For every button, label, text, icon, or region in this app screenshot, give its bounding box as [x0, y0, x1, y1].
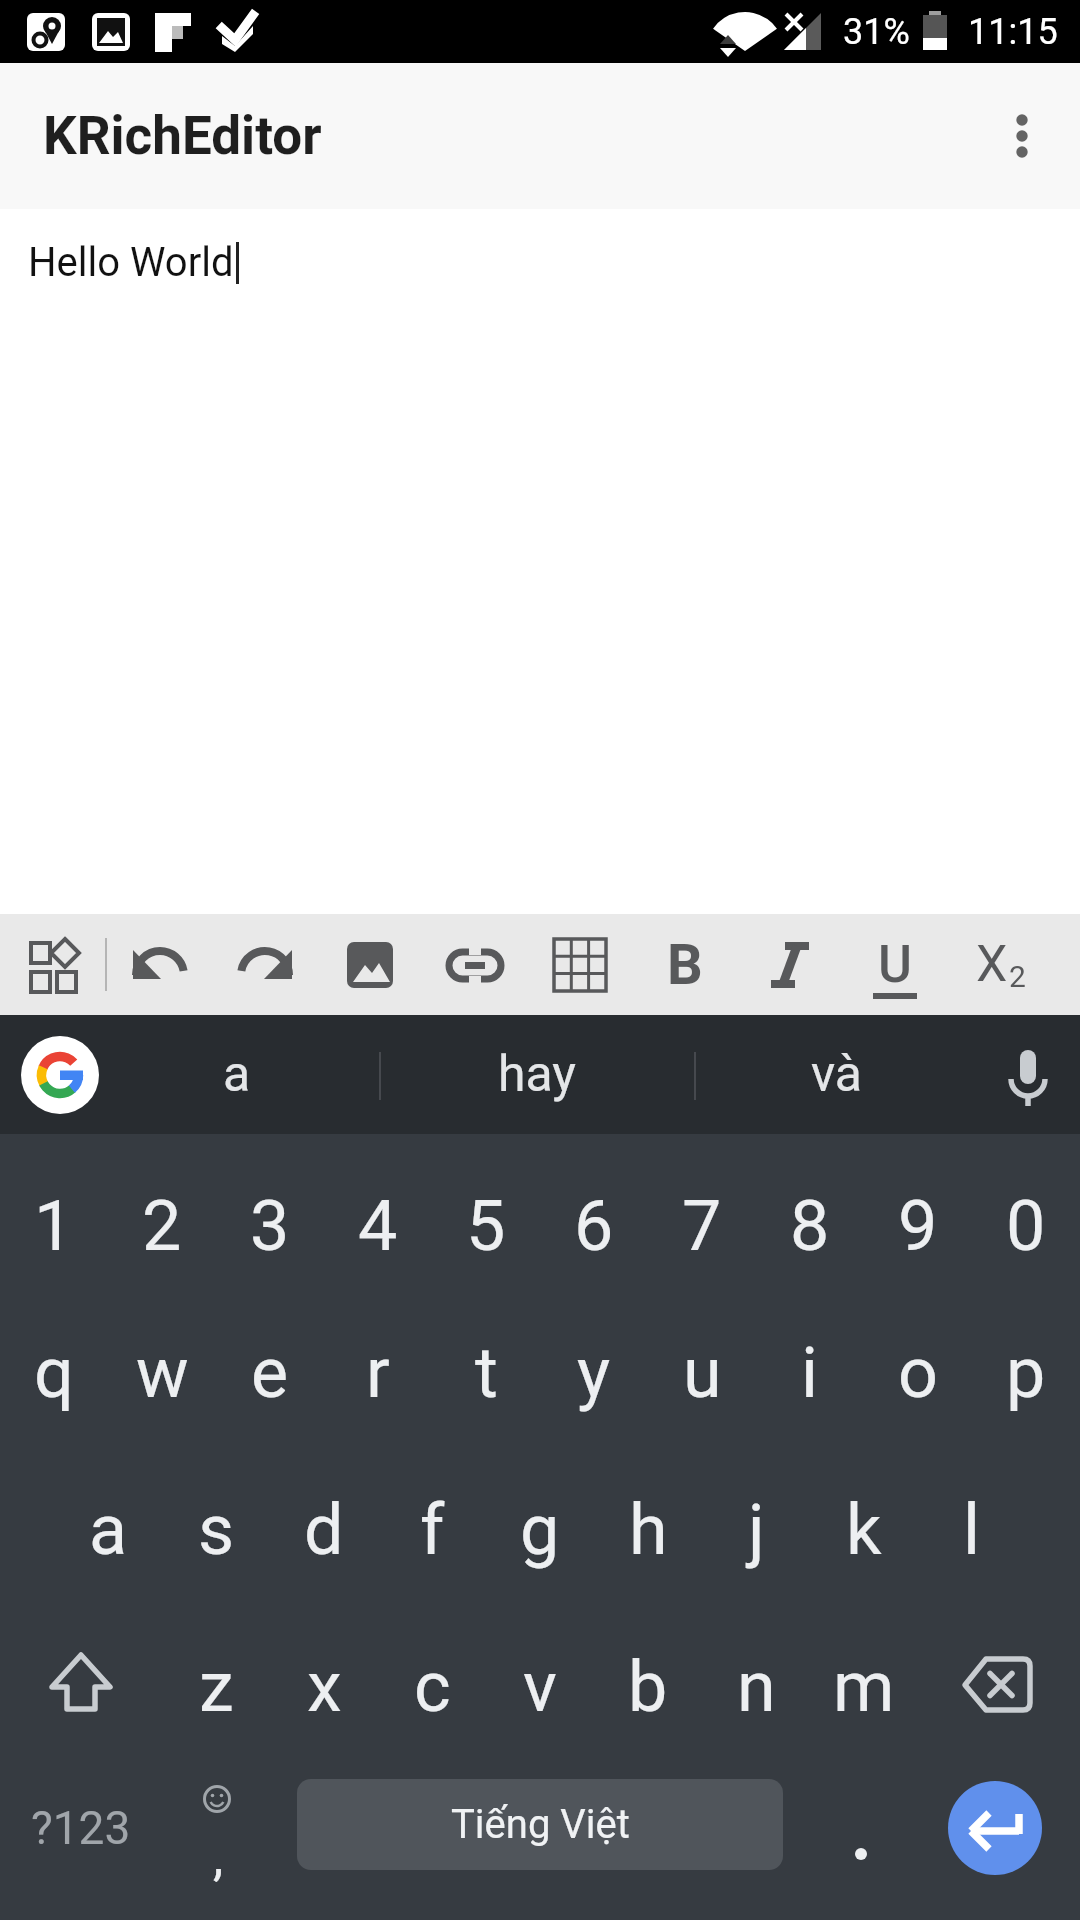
- button[interactable]: m: [810, 1606, 918, 1763]
- button[interactable]: ,: [162, 1763, 270, 1920]
- staticText: u: [683, 1332, 722, 1414]
- button[interactable]: 3: [216, 1134, 324, 1292]
- button[interactable]: t: [432, 1292, 540, 1449]
- staticText: 2: [142, 1185, 182, 1267]
- staticText: s: [198, 1489, 235, 1571]
- button[interactable]: 4: [324, 1134, 432, 1292]
- staticText: 4: [358, 1185, 398, 1267]
- button[interactable]: 7: [648, 1134, 756, 1292]
- button[interactable]: j: [702, 1449, 810, 1606]
- button[interactable]: Hello World: [0, 209, 1080, 914]
- button[interactable]: x: [270, 1606, 378, 1763]
- button[interactable]: và: [787, 1015, 887, 1134]
- button[interactable]: [0, 1606, 162, 1763]
- button[interactable]: u: [648, 1292, 756, 1449]
- staticText: x: [307, 1646, 342, 1728]
- staticText: 11:15: [968, 11, 1058, 53]
- staticText: e: [251, 1332, 289, 1414]
- staticText: b: [628, 1646, 668, 1728]
- staticText: 3: [250, 1185, 290, 1267]
- button[interactable]: B: [632, 914, 737, 1015]
- staticText: và: [811, 1045, 863, 1104]
- button[interactable]: b: [594, 1606, 702, 1763]
- staticText: ,: [213, 1827, 224, 1888]
- button[interactable]: l: [918, 1449, 1026, 1606]
- button[interactable]: hay: [487, 1015, 587, 1134]
- button[interactable]: r: [324, 1292, 432, 1449]
- button[interactable]: [810, 1763, 918, 1920]
- button[interactable]: [212, 914, 317, 1015]
- button[interactable]: [918, 1606, 1080, 1763]
- staticText: k: [846, 1489, 882, 1571]
- staticText: 9: [898, 1185, 938, 1267]
- staticText: 31%: [843, 11, 910, 53]
- button[interactable]: 5: [432, 1134, 540, 1292]
- staticText: a: [223, 1045, 251, 1104]
- button[interactable]: z: [162, 1606, 270, 1763]
- button[interactable]: X: [947, 914, 1052, 1015]
- button[interactable]: 2: [108, 1134, 216, 1292]
- button[interactable]: ?123: [0, 1763, 162, 1920]
- staticText: l: [963, 1489, 981, 1571]
- button[interactable]: [0, 914, 105, 1015]
- button[interactable]: [422, 914, 527, 1015]
- staticText: 8: [790, 1185, 830, 1267]
- button[interactable]: a: [187, 1015, 287, 1134]
- staticText: v: [523, 1646, 557, 1728]
- button[interactable]: v: [486, 1606, 594, 1763]
- staticText: Tiếng Việt: [451, 1801, 630, 1848]
- staticText: o: [898, 1332, 938, 1414]
- staticText: Hello World: [28, 239, 234, 286]
- button[interactable]: a: [54, 1449, 162, 1606]
- staticText: hay: [498, 1045, 577, 1104]
- button[interactable]: s: [162, 1449, 270, 1606]
- button[interactable]: n: [702, 1606, 810, 1763]
- button[interactable]: [737, 914, 842, 1015]
- staticText: z: [199, 1646, 234, 1728]
- button[interactable]: 0: [972, 1134, 1080, 1292]
- button[interactable]: q: [0, 1292, 108, 1449]
- button[interactable]: 6: [540, 1134, 648, 1292]
- staticText: p: [1006, 1332, 1046, 1414]
- staticText: h: [629, 1489, 668, 1571]
- button[interactable]: [980, 86, 1080, 186]
- button[interactable]: y: [540, 1292, 648, 1449]
- button[interactable]: o: [864, 1292, 972, 1449]
- button[interactable]: [527, 914, 632, 1015]
- staticText: q: [34, 1332, 74, 1414]
- staticText: 0: [1006, 1185, 1046, 1267]
- button[interactable]: p: [972, 1292, 1080, 1449]
- staticText: f: [420, 1489, 445, 1571]
- button[interactable]: g: [486, 1449, 594, 1606]
- staticText: t: [475, 1332, 498, 1414]
- button[interactable]: [317, 914, 422, 1015]
- button[interactable]: c: [378, 1606, 486, 1763]
- staticText: ?123: [31, 1801, 131, 1855]
- button[interactable]: [21, 1036, 99, 1114]
- button[interactable]: 8: [756, 1134, 864, 1292]
- staticText: 7: [682, 1185, 722, 1267]
- staticText: c: [414, 1646, 451, 1728]
- staticText: a: [89, 1489, 128, 1571]
- staticText: m: [833, 1646, 895, 1728]
- button[interactable]: [107, 914, 212, 1015]
- staticText: y: [577, 1332, 611, 1414]
- button[interactable]: d: [270, 1449, 378, 1606]
- button[interactable]: k: [810, 1449, 918, 1606]
- staticText: B: [667, 932, 703, 998]
- button[interactable]: f: [378, 1449, 486, 1606]
- button[interactable]: Tiếng Việt: [297, 1763, 783, 1920]
- button[interactable]: e: [216, 1292, 324, 1449]
- button[interactable]: [918, 1763, 1080, 1920]
- button[interactable]: 9: [864, 1134, 972, 1292]
- staticText: g: [520, 1489, 560, 1571]
- button[interactable]: w: [108, 1292, 216, 1449]
- button[interactable]: 1: [0, 1134, 108, 1292]
- staticText: KRichEditor: [43, 105, 322, 167]
- button[interactable]: h: [594, 1449, 702, 1606]
- button[interactable]: U: [842, 914, 947, 1015]
- staticText: r: [366, 1332, 390, 1414]
- button[interactable]: i: [756, 1292, 864, 1449]
- staticText: 1: [34, 1185, 74, 1267]
- staticText: X: [976, 935, 1008, 994]
